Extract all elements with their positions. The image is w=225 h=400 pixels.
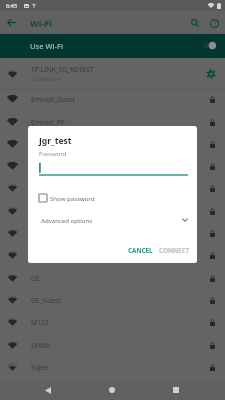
button[interactable]: Back [38,380,58,400]
staticText: Embest_Guest [31,95,76,104]
staticText: CANCEL [128,246,153,255]
button[interactable]: Home [102,380,122,400]
staticText: CONNECT [159,246,190,255]
button[interactable]: Embest_PF [0,111,225,133]
button[interactable]: CANCEL [122,242,159,259]
staticText: TP-LINK_5G_RDTEST [31,65,94,74]
staticText: Password [39,149,67,157]
staticText: Use Wi-Fi [30,41,63,51]
button[interactable]: Jgr_test [0,155,225,177]
button[interactable]: Back [4,15,19,30]
staticText: 6:45 [6,2,18,10]
staticText: ? [213,19,216,28]
staticText: Embest [31,140,55,149]
staticText: GE_Guest [31,296,61,305]
button[interactable]: SK666 [0,334,225,356]
staticText: GE [31,274,40,283]
button[interactable]: Linksys [0,244,225,266]
button[interactable]: Recents [166,380,186,400]
staticText: Connected [31,75,61,83]
staticText: Jgr_test [39,135,72,147]
button[interactable]: GE_Guest [0,289,225,311]
staticText: Wi-Fi [30,17,52,29]
staticText: Advanced options [41,216,93,224]
button[interactable]: HW_Guest [0,222,225,244]
staticText: Embest_PF [31,118,65,127]
staticText: Jgr_test [31,162,55,171]
button[interactable]: CONNECT [153,242,196,259]
staticText: Show password [50,194,95,202]
button[interactable]: Embest_Guest [0,88,225,110]
staticText: SK666 [31,341,51,350]
button[interactable]: TP-LINK_5G_RDTEST [0,58,225,89]
button[interactable]: Show password [39,194,95,202]
button[interactable]: Search [187,15,203,31]
button[interactable]: Advanced options [28,213,197,227]
button[interactable]: Use Wi-Fi [0,34,225,58]
button[interactable]: Embest [0,133,225,155]
staticText: Super [31,363,50,372]
button[interactable]: TP-LINK_TEST [0,177,225,199]
button[interactable]: Network settings [204,67,218,81]
button[interactable]: Help [206,15,222,31]
button[interactable]: M123 [0,311,225,333]
staticText: M123 [31,318,49,327]
button[interactable]: GE [0,267,225,289]
button[interactable]: AAA_Test [0,200,225,222]
button[interactable]: Super [0,356,225,378]
